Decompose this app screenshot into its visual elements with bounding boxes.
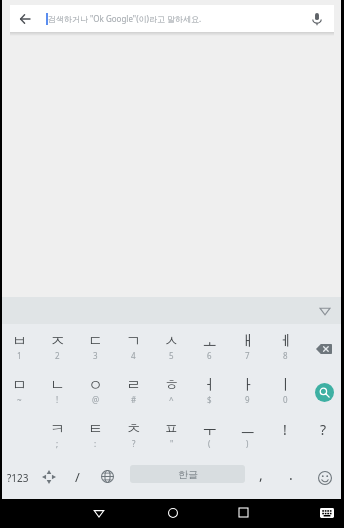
staticText: ;	[56, 438, 59, 449]
button[interactable]: ?	[304, 412, 342, 456]
button[interactable]: ㅡ	[228, 412, 266, 456]
staticText: ㅏ	[240, 376, 255, 395]
staticText: .	[289, 465, 293, 484]
button[interactable]: ㅔ	[266, 324, 304, 368]
button[interactable]: ㅊ	[114, 412, 152, 456]
button[interactable]: ㅁ	[0, 368, 38, 412]
button[interactable]: ㅣ	[266, 368, 304, 412]
staticText: ㅁ	[12, 376, 27, 395]
staticText: 3	[93, 350, 98, 361]
staticText: :	[94, 438, 97, 449]
staticText: ㄴ	[50, 376, 65, 395]
staticText: 4	[131, 350, 136, 361]
staticText: ?	[320, 420, 327, 439]
button[interactable]: Back	[10, 5, 40, 32]
staticText: 6	[207, 350, 212, 361]
staticText: ㅂ	[12, 332, 27, 351]
button[interactable]: Home	[148, 499, 198, 528]
button[interactable]: ㅜ	[190, 412, 228, 456]
staticText: ^	[169, 394, 174, 405]
staticText: @	[92, 394, 100, 405]
staticText: 8	[283, 350, 288, 361]
button[interactable]: .	[276, 456, 306, 499]
staticText: /	[75, 468, 80, 486]
staticText: ㅐ	[240, 332, 255, 351]
staticText: 5	[169, 350, 174, 361]
staticText: !	[56, 394, 59, 405]
button[interactable]: Emoji	[306, 456, 344, 499]
button[interactable]: ㅂ	[0, 324, 38, 368]
button[interactable]: ㄷ	[76, 324, 114, 368]
button[interactable]: ㅌ	[76, 412, 114, 456]
staticText: 0	[283, 394, 288, 405]
staticText: ㅍ	[164, 420, 179, 439]
staticText: ㄷ	[88, 332, 103, 351]
staticText: 1	[17, 350, 22, 361]
staticText: ,	[259, 465, 263, 484]
button[interactable]: ㅐ	[228, 324, 266, 368]
button[interactable]: ㅋ	[38, 412, 76, 456]
button[interactable]: ㅏ	[228, 368, 266, 412]
staticText: ㅜ	[202, 420, 217, 439]
staticText: ?	[132, 438, 136, 449]
button[interactable]: ?123	[0, 456, 36, 499]
staticText: 9	[245, 394, 250, 405]
button[interactable]: ㄹ	[114, 368, 152, 412]
staticText: ㅓ	[202, 376, 217, 395]
staticText: $	[207, 394, 212, 405]
button[interactable]: ㅍ	[152, 412, 190, 456]
button[interactable]: ㄴ	[38, 368, 76, 412]
staticText: )	[246, 438, 249, 449]
staticText: ㅡ	[240, 420, 255, 439]
staticText: ㅗ	[202, 332, 217, 351]
staticText: ㄱ	[126, 332, 141, 351]
button[interactable]: ㅅ	[152, 324, 190, 368]
button[interactable]: 한글	[130, 465, 245, 483]
button[interactable]: !	[266, 412, 304, 456]
staticText: 2	[55, 350, 60, 361]
staticText: #	[131, 394, 137, 405]
button[interactable]: ㅓ	[190, 368, 228, 412]
staticText: !	[283, 420, 287, 439]
button[interactable]: Voice search	[300, 5, 334, 32]
staticText: ~	[17, 394, 22, 405]
staticText: ㅋ	[50, 420, 65, 439]
button[interactable]: Change language	[92, 456, 122, 499]
button[interactable]: Search	[304, 368, 344, 412]
button[interactable]: Backspace	[304, 324, 344, 368]
staticText: (	[208, 438, 211, 449]
staticText: ㅌ	[88, 420, 103, 439]
button[interactable]: Recent apps	[218, 499, 268, 528]
button[interactable]: ㅈ	[38, 324, 76, 368]
staticText: 7	[245, 350, 250, 361]
staticText: ㅎ	[164, 376, 179, 395]
button[interactable]: /	[62, 456, 92, 499]
button[interactable]: ㅎ	[152, 368, 190, 412]
button[interactable]: ㄱ	[114, 324, 152, 368]
staticText: ㄹ	[126, 376, 141, 395]
staticText: 검색하거나 "Ok Google"(이)라고 말하세요.	[48, 13, 202, 24]
button[interactable]: Expand suggestions	[306, 297, 344, 324]
button[interactable]: Switch keyboard	[310, 499, 344, 528]
staticText: ㅈ	[50, 332, 65, 351]
staticText: "	[170, 438, 174, 449]
button[interactable]: Shift	[0, 412, 38, 456]
button[interactable]: Cursor control	[36, 456, 62, 499]
staticText: ㅔ	[278, 332, 293, 351]
button[interactable]: ㅗ	[190, 324, 228, 368]
button[interactable]: Hide keyboard	[74, 499, 124, 528]
staticText: ㅇ	[88, 376, 103, 395]
staticText: 한글	[178, 468, 198, 481]
staticText: ?123	[7, 471, 29, 485]
staticText: ㅅ	[164, 332, 179, 351]
staticText: ㅣ	[278, 376, 293, 395]
staticText: ㅊ	[126, 420, 141, 439]
button[interactable]: ㅇ	[76, 368, 114, 412]
button[interactable]: ,	[246, 456, 276, 499]
